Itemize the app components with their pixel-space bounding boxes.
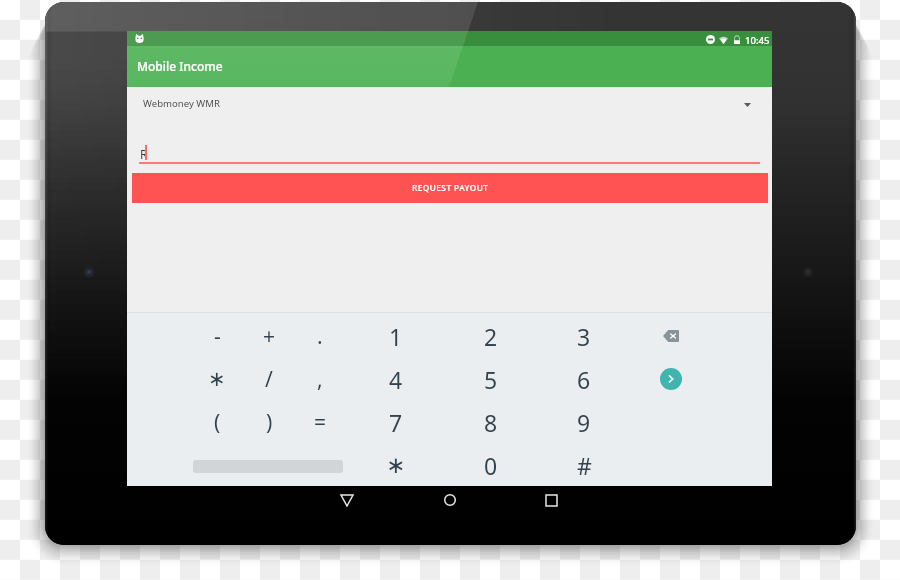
button[interactable]: Space	[173, 446, 363, 486]
staticText: 0	[484, 450, 498, 481]
staticText: ∗	[208, 367, 226, 391]
staticText: (	[214, 408, 221, 437]
button[interactable]: 0	[456, 445, 526, 485]
button[interactable]: 1	[361, 316, 431, 356]
staticText: Webmoney WMR	[143, 97, 220, 110]
button[interactable]: ,	[298, 359, 342, 399]
button[interactable]: /	[247, 359, 291, 399]
staticText: #	[577, 450, 592, 481]
button[interactable]: R	[137, 141, 762, 167]
staticText: -	[214, 322, 221, 351]
staticText: =	[314, 408, 327, 437]
button[interactable]: ∗	[361, 445, 431, 485]
button[interactable]: #	[549, 445, 619, 485]
staticText: .	[317, 322, 323, 351]
button[interactable]: )	[247, 402, 291, 442]
button[interactable]: 8	[456, 402, 526, 442]
button[interactable]: Webmoney WMR	[127, 89, 772, 117]
button[interactable]: (	[195, 402, 239, 442]
button[interactable]: REQUEST PAYOUT	[132, 173, 768, 203]
staticText: 7	[389, 407, 403, 438]
staticText: Mobile Income	[137, 58, 223, 74]
button[interactable]: 3	[549, 316, 619, 356]
staticText: 8	[484, 407, 498, 438]
staticText: 10:45	[745, 34, 770, 47]
staticText: 3	[577, 321, 591, 352]
button[interactable]: 6	[549, 359, 619, 399]
button[interactable]: Home	[435, 485, 465, 515]
staticText: ,	[317, 365, 323, 394]
staticText: REQUEST PAYOUT	[412, 182, 489, 193]
staticText: R	[140, 146, 148, 162]
staticText: 4	[389, 364, 403, 395]
staticText: 9	[577, 407, 591, 438]
staticText: /	[265, 365, 273, 394]
staticText: 1	[389, 321, 403, 352]
button[interactable]: Enter	[649, 359, 693, 399]
staticText: +	[263, 322, 276, 351]
button[interactable]: 4	[361, 359, 431, 399]
button[interactable]: Recents	[536, 485, 566, 515]
staticText: 5	[484, 364, 498, 395]
button[interactable]: .	[298, 316, 342, 356]
button[interactable]: ∗	[195, 359, 239, 399]
staticText: )	[266, 408, 273, 437]
button[interactable]: 2	[456, 316, 526, 356]
staticText: ∗	[386, 452, 406, 479]
button[interactable]: 7	[361, 402, 431, 442]
button[interactable]: -	[195, 316, 239, 356]
staticText: 6	[577, 364, 591, 395]
button[interactable]: =	[298, 402, 342, 442]
button[interactable]: +	[247, 316, 291, 356]
button[interactable]: Backspace	[649, 316, 693, 356]
button[interactable]: Back	[332, 485, 362, 515]
button[interactable]: 5	[456, 359, 526, 399]
staticText: 2	[484, 321, 498, 352]
button[interactable]: Mobile Income	[137, 58, 223, 74]
button[interactable]: 9	[549, 402, 619, 442]
